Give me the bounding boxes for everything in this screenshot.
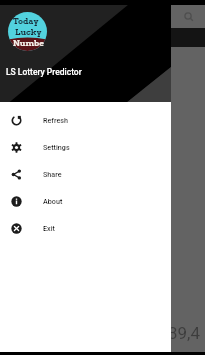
staticText: Exit (43, 224, 55, 232)
button[interactable]: Search (183, 11, 195, 23)
staticText: 39,4 (168, 323, 201, 343)
button[interactable]: Exit (0, 214, 171, 241)
button[interactable]: Refresh (0, 106, 171, 133)
staticText: LS Lottery Predictor (6, 67, 82, 77)
staticText: Numbe (13, 38, 45, 48)
staticText: Today (13, 16, 39, 26)
staticText: About (43, 197, 63, 205)
staticText: Share (43, 170, 62, 178)
staticText: Refresh (43, 116, 68, 124)
button[interactable]: Settings (0, 133, 171, 160)
button[interactable]: Share (0, 160, 171, 187)
button[interactable]: About (0, 187, 171, 214)
staticText: Settings (43, 143, 70, 151)
staticText: Lucky (15, 27, 42, 37)
